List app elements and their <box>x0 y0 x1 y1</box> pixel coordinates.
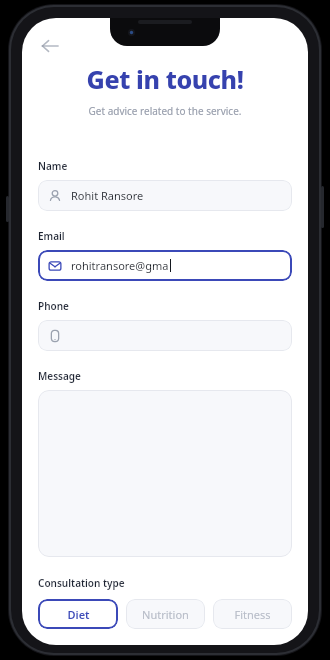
button[interactable]: Fitness <box>213 599 292 629</box>
staticText: Diet <box>67 607 90 622</box>
staticText: Nutrition <box>142 607 189 622</box>
staticText: Fitness <box>234 607 271 622</box>
staticText: Get advice related to the service. <box>38 104 292 118</box>
staticText: Email <box>38 229 65 243</box>
staticText: Name <box>38 159 68 173</box>
button[interactable]: Diet <box>38 599 118 629</box>
staticText: Get in touch! <box>38 62 292 96</box>
staticText: rohitransore@gma <box>71 258 169 273</box>
button[interactable]: rohitransore@gma <box>38 250 292 281</box>
staticText: Consultation type <box>38 576 125 590</box>
staticText: Phone <box>38 299 69 313</box>
button[interactable]: Rohit Ransore <box>38 180 292 211</box>
button[interactable]: Nutrition <box>126 599 205 629</box>
staticText: Rohit Ransore <box>71 188 144 203</box>
staticText: Message <box>38 369 81 383</box>
button[interactable] <box>38 320 292 351</box>
button[interactable]: Back <box>38 34 62 58</box>
